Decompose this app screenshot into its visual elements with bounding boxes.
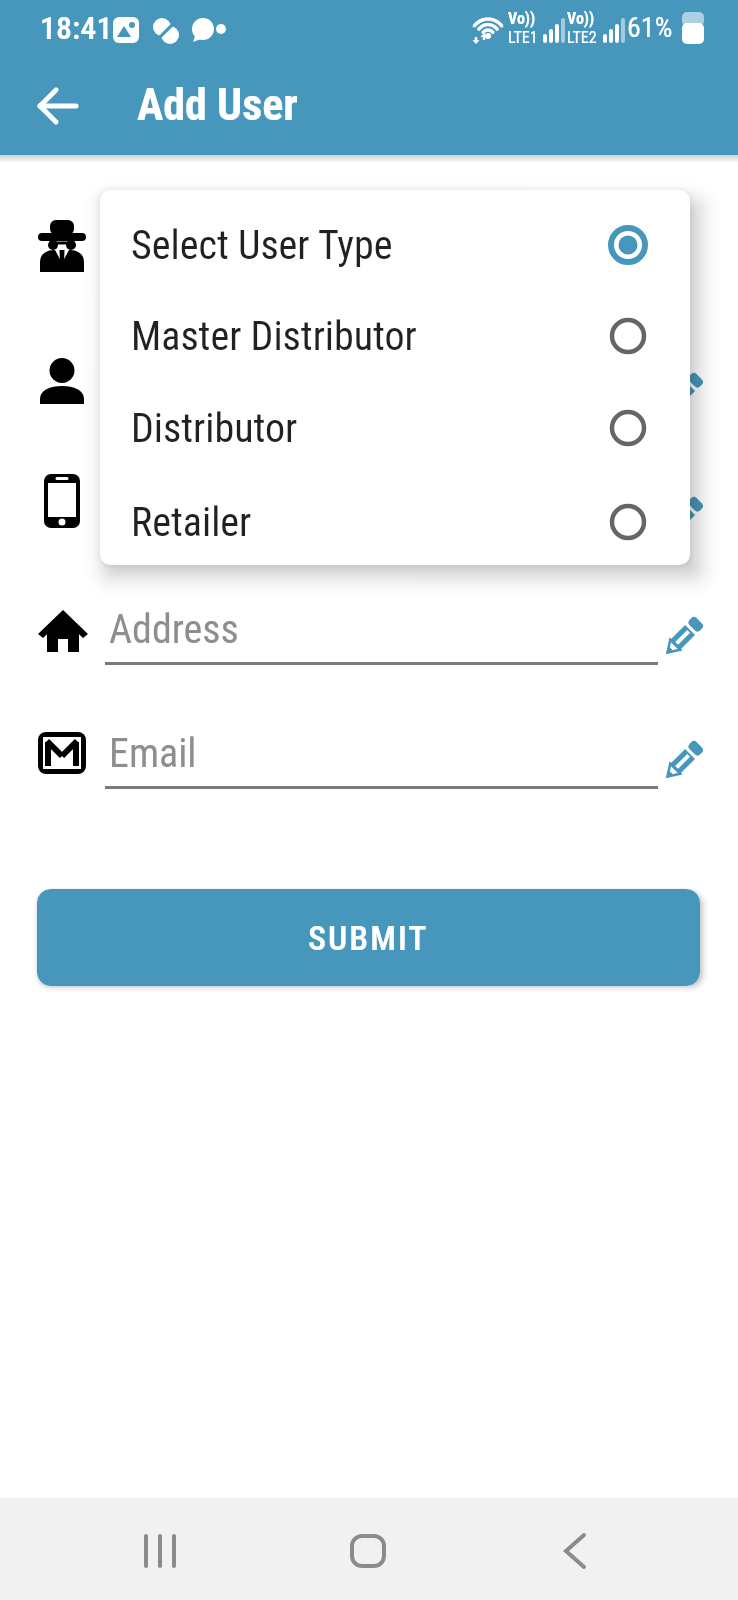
staticText: Address — [109, 606, 239, 653]
button[interactable] — [350, 1534, 386, 1568]
button[interactable] — [659, 613, 707, 661]
button[interactable] — [659, 493, 707, 541]
staticText: Vo)) — [508, 9, 536, 28]
staticText: Retailer — [131, 499, 252, 546]
button[interactable] — [558, 1534, 592, 1568]
button[interactable]: Select User Type — [100, 200, 690, 290]
button[interactable]: Distributor — [100, 383, 690, 473]
staticText: LTE1 — [508, 28, 538, 47]
button[interactable]: Address — [105, 604, 658, 665]
staticText: Vo)) — [567, 9, 595, 28]
staticText: 61% — [627, 11, 673, 44]
button[interactable]: Retailer — [100, 477, 690, 565]
staticText: Add User — [137, 79, 298, 131]
staticText: LTE2 — [567, 28, 597, 47]
staticText: Master Distributor — [131, 313, 417, 360]
button[interactable] — [30, 85, 86, 127]
staticText: SUBMIT — [308, 918, 429, 958]
button[interactable]: SUBMIT — [37, 889, 700, 986]
staticText: Distributor — [131, 405, 298, 452]
staticText: Email — [109, 730, 197, 777]
staticText: 18:41 — [40, 9, 113, 47]
button[interactable] — [659, 737, 707, 785]
button[interactable]: Email — [105, 728, 658, 789]
button[interactable] — [659, 369, 707, 417]
button[interactable]: Master Distributor — [100, 291, 690, 381]
button[interactable] — [142, 1534, 180, 1568]
staticText: Select User Type — [131, 222, 393, 269]
